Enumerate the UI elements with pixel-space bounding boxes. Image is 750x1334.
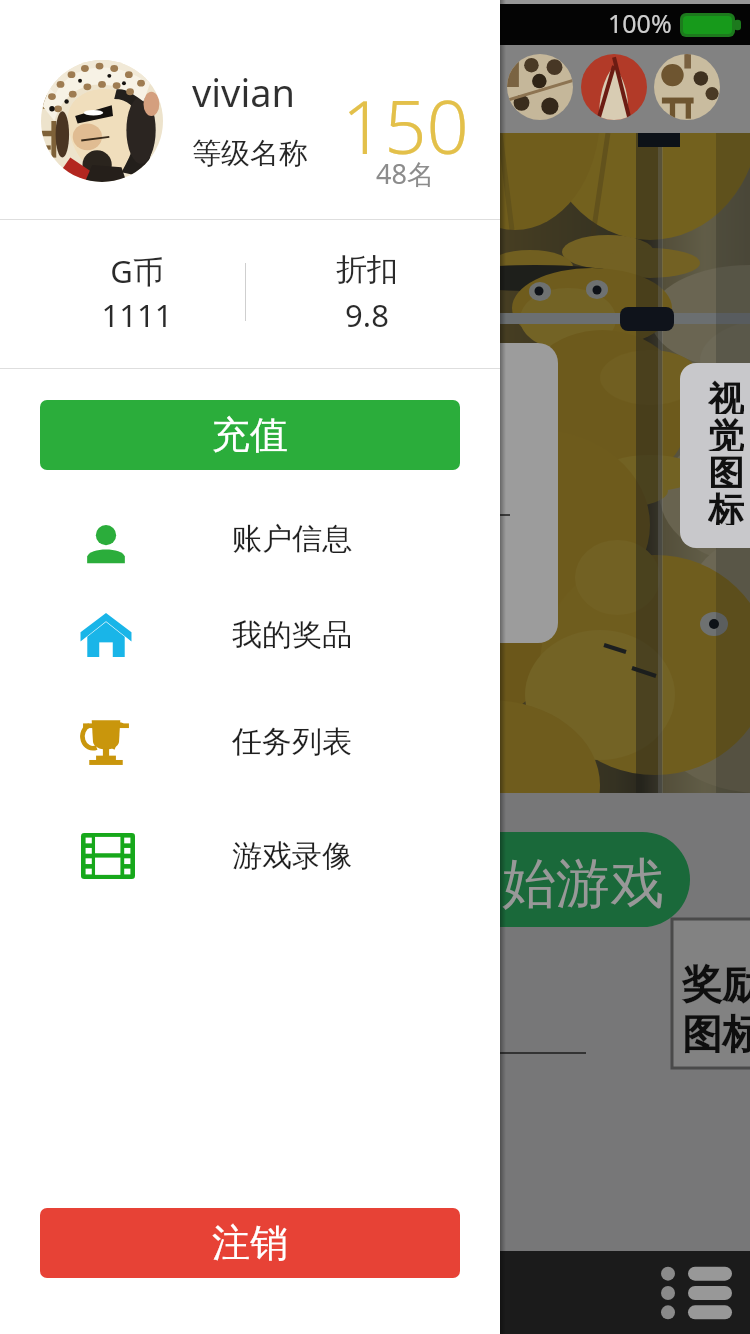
staticText: 任务列表 — [232, 723, 352, 761]
staticText: 1111 — [37, 294, 237, 336]
staticText: 账户信息 — [232, 520, 352, 558]
staticText: 等级名称 — [192, 135, 308, 172]
button[interactable]: 奖励 — [672, 919, 750, 1068]
button[interactable]: 充值 — [40, 400, 460, 470]
staticText: 图标 — [682, 1009, 750, 1059]
button[interactable]: 账户信息 — [0, 493, 500, 585]
button[interactable]: 任务列表 — [0, 696, 500, 788]
staticText: vivian — [192, 66, 296, 118]
staticText: 充值 — [212, 411, 288, 459]
staticText: 100% — [608, 6, 672, 40]
staticText: 奖励 — [682, 959, 750, 1009]
staticText: 图 — [708, 451, 744, 488]
button[interactable]: 注销 — [40, 1208, 460, 1278]
button[interactable]: 我的奖品 — [0, 589, 500, 681]
staticText: 我的奖品 — [232, 616, 352, 654]
button[interactable]: Card — [330, 343, 558, 643]
staticText: 折扣 — [267, 250, 467, 289]
staticText: G币 — [37, 250, 237, 292]
button[interactable]: 游戏录像 — [0, 810, 500, 902]
staticText: 48名 — [376, 155, 434, 192]
button[interactable]: 开始游戏 — [300, 832, 690, 927]
button[interactable]: 折扣 — [267, 220, 467, 368]
staticText: 开始游戏 — [448, 850, 664, 918]
button[interactable]: G币 — [37, 220, 237, 368]
staticText: 150 — [342, 75, 469, 176]
staticText: 注销 — [212, 1219, 288, 1267]
staticText: 9.8 — [267, 294, 467, 336]
staticText: 游戏录像 — [232, 837, 352, 875]
button[interactable]: 视 — [680, 363, 750, 548]
button[interactable]: Menu — [655, 1260, 737, 1326]
staticText: 视 — [708, 377, 744, 414]
staticText: 觉 — [708, 414, 744, 451]
staticText: 标 — [708, 488, 744, 525]
button[interactable]: Avatar — [41, 60, 163, 182]
